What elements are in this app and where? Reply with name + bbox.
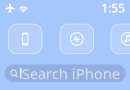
button[interactable]: Search iPhone <box>5 64 126 82</box>
staticText: 1:55 <box>101 0 125 16</box>
button[interactable]: iPhone <box>8 24 42 54</box>
button[interactable]: Apple Watch <box>60 24 93 54</box>
button[interactable]: Music <box>111 24 130 54</box>
staticText: Search iPhone <box>22 64 120 83</box>
